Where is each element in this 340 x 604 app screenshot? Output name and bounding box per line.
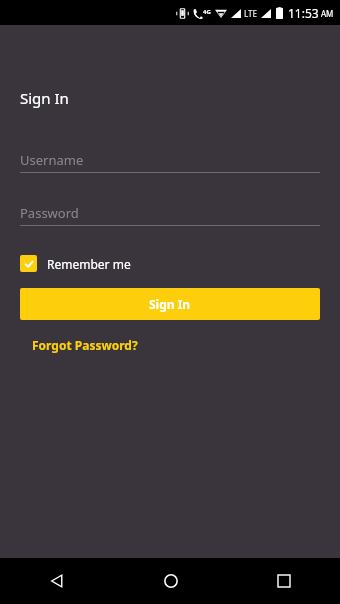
- button[interactable]: Sign In: [20, 288, 320, 320]
- staticText: 11:53: [288, 5, 319, 21]
- staticText: Username: [20, 151, 84, 169]
- button[interactable]: Username: [20, 151, 320, 173]
- button[interactable]: Forgot Password?: [32, 335, 138, 355]
- staticText: Forgot Password?: [32, 337, 138, 353]
- staticText: Remember me: [47, 256, 131, 272]
- staticText: LTE: [244, 8, 258, 19]
- button[interactable]: Back: [0, 558, 114, 604]
- staticText: AM: [321, 8, 334, 19]
- button[interactable]: Remember me: [20, 253, 139, 274]
- staticText: Password: [20, 204, 79, 222]
- staticText: 4G: [203, 8, 211, 16]
- button[interactable]: Recent apps: [227, 558, 340, 604]
- staticText: Sign In: [20, 88, 69, 108]
- button[interactable]: Home: [114, 558, 227, 604]
- button[interactable]: Password: [20, 204, 320, 226]
- staticText: Sign In: [149, 296, 191, 312]
